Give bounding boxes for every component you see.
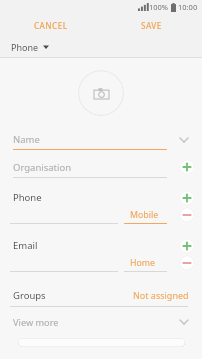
button[interactable]: Organisation <box>0 154 202 182</box>
button[interactable]: CANCEL <box>28 17 74 34</box>
button[interactable]: Groups <box>0 284 202 311</box>
staticText: Email <box>13 239 38 252</box>
button[interactable]: Add field <box>179 190 195 206</box>
button[interactable]: Name <box>0 128 202 154</box>
button[interactable]: View more <box>0 311 202 333</box>
button[interactable]: SAVE <box>135 17 168 34</box>
staticText: Not assigned <box>133 289 189 301</box>
staticText: Organisation <box>13 161 72 174</box>
staticText: Phone <box>13 191 42 204</box>
staticText: Name <box>13 133 40 146</box>
staticText: CANCEL <box>34 20 68 31</box>
staticText: Home <box>130 257 156 269</box>
staticText: 10:00 <box>178 2 198 12</box>
button[interactable]: Remove field <box>179 255 195 271</box>
staticText: SAVE <box>141 20 162 31</box>
staticText: Groups <box>13 289 46 302</box>
staticText: Phone <box>11 41 39 53</box>
staticText: 100% <box>149 2 169 12</box>
button[interactable]: Add contact photo <box>78 70 124 116</box>
button[interactable]: View more fields <box>174 312 194 332</box>
button[interactable]: Add field <box>179 159 195 175</box>
button[interactable]: Phone <box>0 36 202 57</box>
button[interactable]: Remove field <box>179 207 195 223</box>
staticText: Mobile <box>130 209 159 221</box>
button[interactable]: Add field <box>179 238 195 254</box>
button[interactable]: Expand name fields <box>174 130 194 150</box>
staticText: View more <box>13 316 59 329</box>
